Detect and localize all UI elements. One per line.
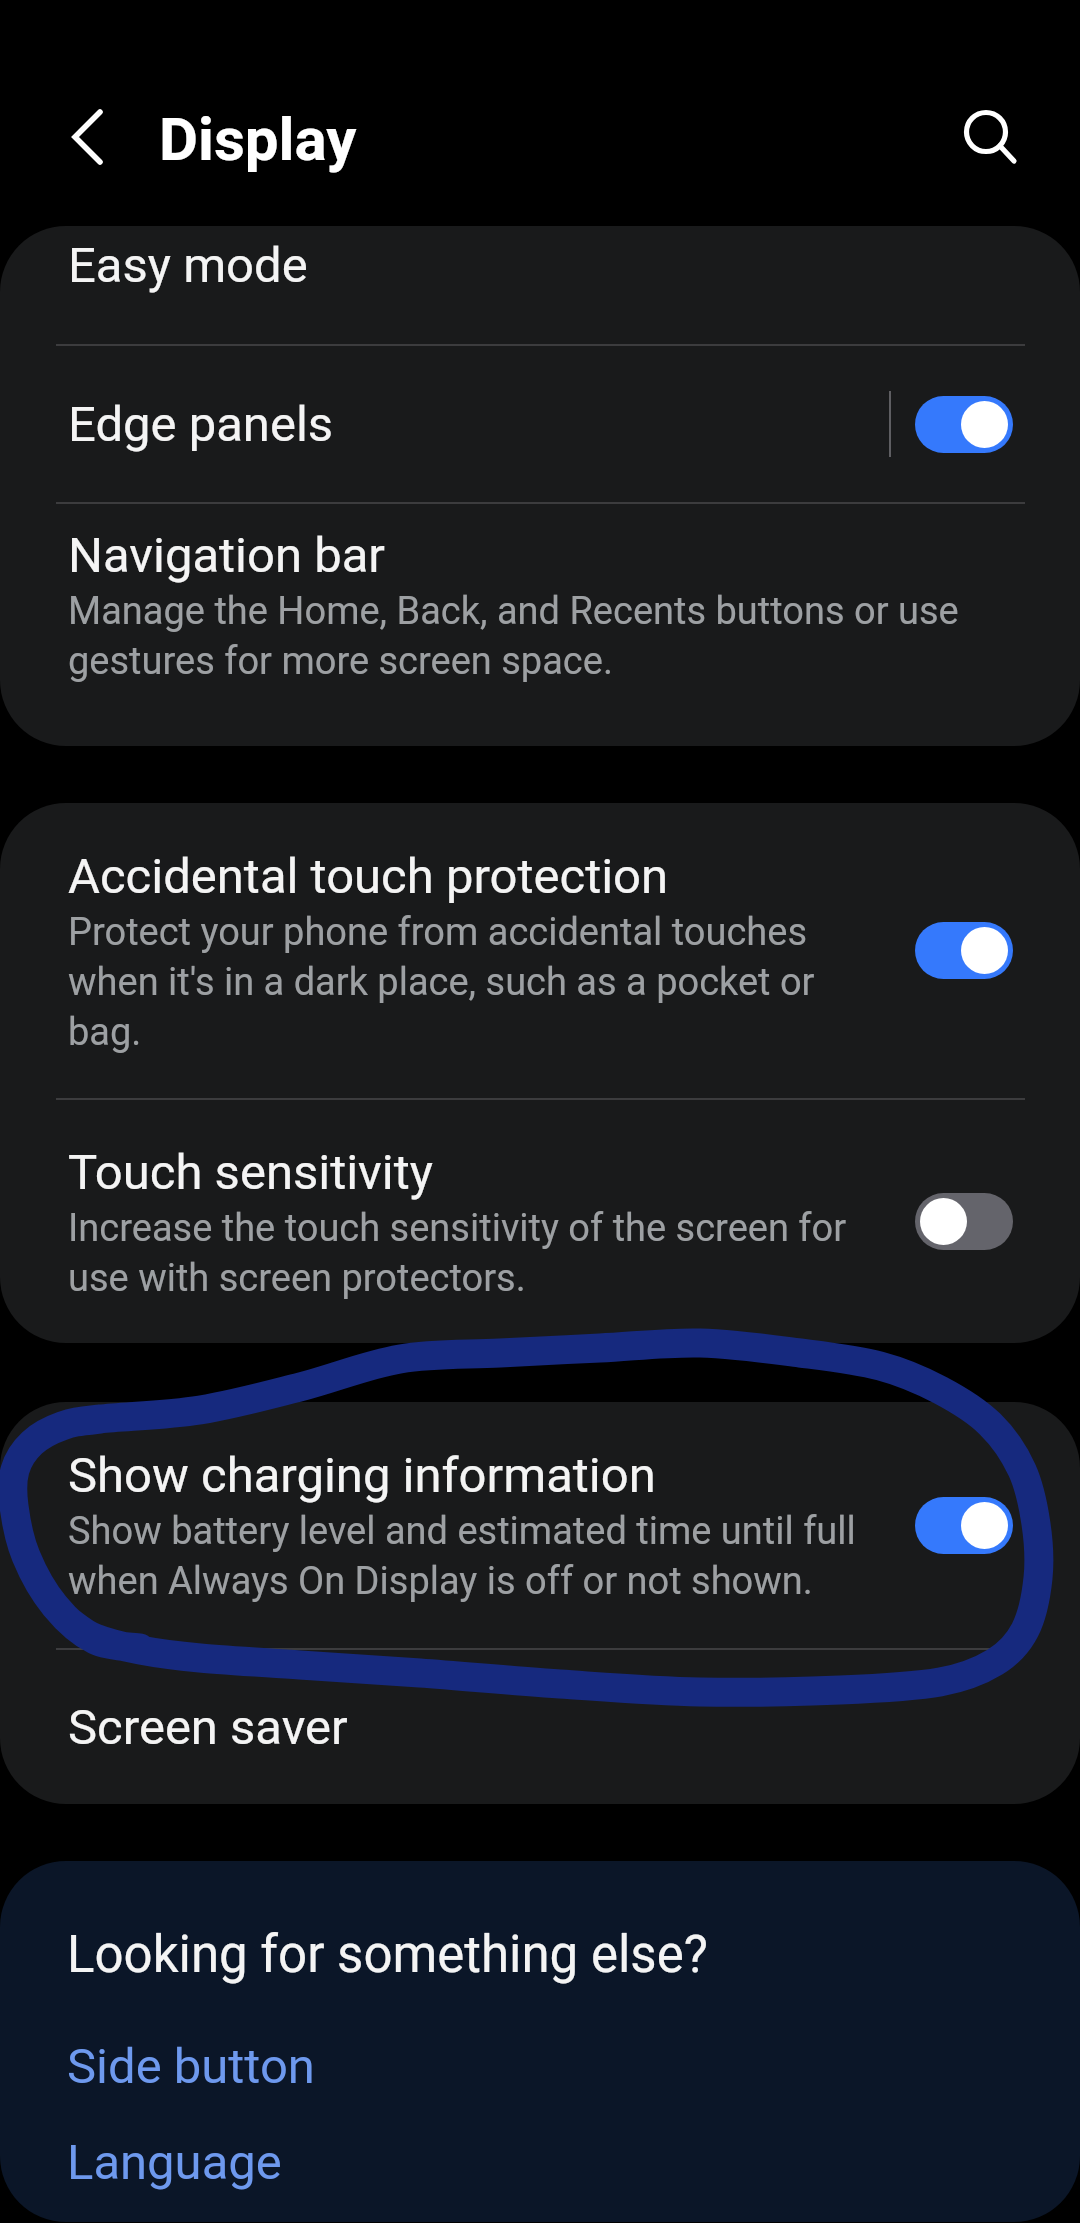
button[interactable]: Touch sensitivity <box>0 1100 1080 1343</box>
staticText: Looking for something else? <box>67 1925 708 1985</box>
staticText: Accidental touch protection <box>68 847 669 905</box>
button[interactable]: Switch on <box>915 396 1013 453</box>
staticText: Edge panels <box>68 395 334 453</box>
staticText: Side button <box>67 2038 315 2095</box>
button[interactable]: Navigation bar <box>0 504 1080 706</box>
staticText: Screen saver <box>68 1698 348 1756</box>
staticText: Manage the Home, Back, and Recents butto… <box>68 584 959 684</box>
button[interactable]: Accidental touch protection <box>0 803 1080 1098</box>
button[interactable]: Easy mode <box>0 226 1080 344</box>
button[interactable]: Side button <box>0 2032 1080 2101</box>
button[interactable]: Switch off <box>915 1193 1013 1250</box>
staticText: Protect your phone from accidental touch… <box>68 905 815 1055</box>
staticText: Easy mode <box>68 236 308 294</box>
staticText: Navigation bar <box>68 526 385 584</box>
button[interactable]: Search <box>942 93 1030 181</box>
button[interactable]: Edge panels <box>0 346 1080 502</box>
button[interactable]: Language <box>0 2128 1080 2197</box>
button[interactable]: Screen saver <box>0 1650 1080 1804</box>
button[interactable]: Switch on <box>915 922 1013 979</box>
staticText: Language <box>67 2134 282 2191</box>
button[interactable]: Show charging information <box>0 1402 1080 1648</box>
staticText: Show battery level and estimated time un… <box>68 1504 856 1604</box>
staticText: Show charging information <box>68 1446 656 1504</box>
button[interactable]: Switch on <box>915 1497 1013 1554</box>
staticText: Touch sensitivity <box>68 1143 433 1201</box>
button[interactable]: Back <box>43 93 131 181</box>
staticText: Display <box>159 104 357 174</box>
staticText: Increase the touch sensitivity of the sc… <box>68 1201 847 1301</box>
